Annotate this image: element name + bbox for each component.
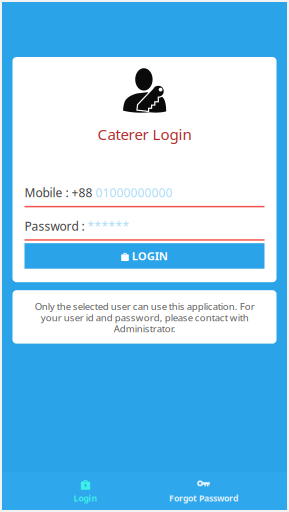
staticText: LOGIN <box>132 248 168 264</box>
staticText: ****** <box>87 218 129 234</box>
staticText: 01000000000 <box>95 184 172 201</box>
staticText: Login <box>73 492 97 504</box>
staticText: Forgot Password <box>169 492 238 504</box>
staticText: Caterer Login <box>97 124 191 144</box>
staticText: Mobile : +88 <box>24 184 95 201</box>
button[interactable]: Forgot Password <box>144 472 262 510</box>
button[interactable]: Login <box>26 472 144 510</box>
staticText: Password : <box>24 218 87 234</box>
button[interactable]: LOGIN <box>24 243 264 269</box>
staticText: Only the selected user can use this appl… <box>34 300 254 335</box>
